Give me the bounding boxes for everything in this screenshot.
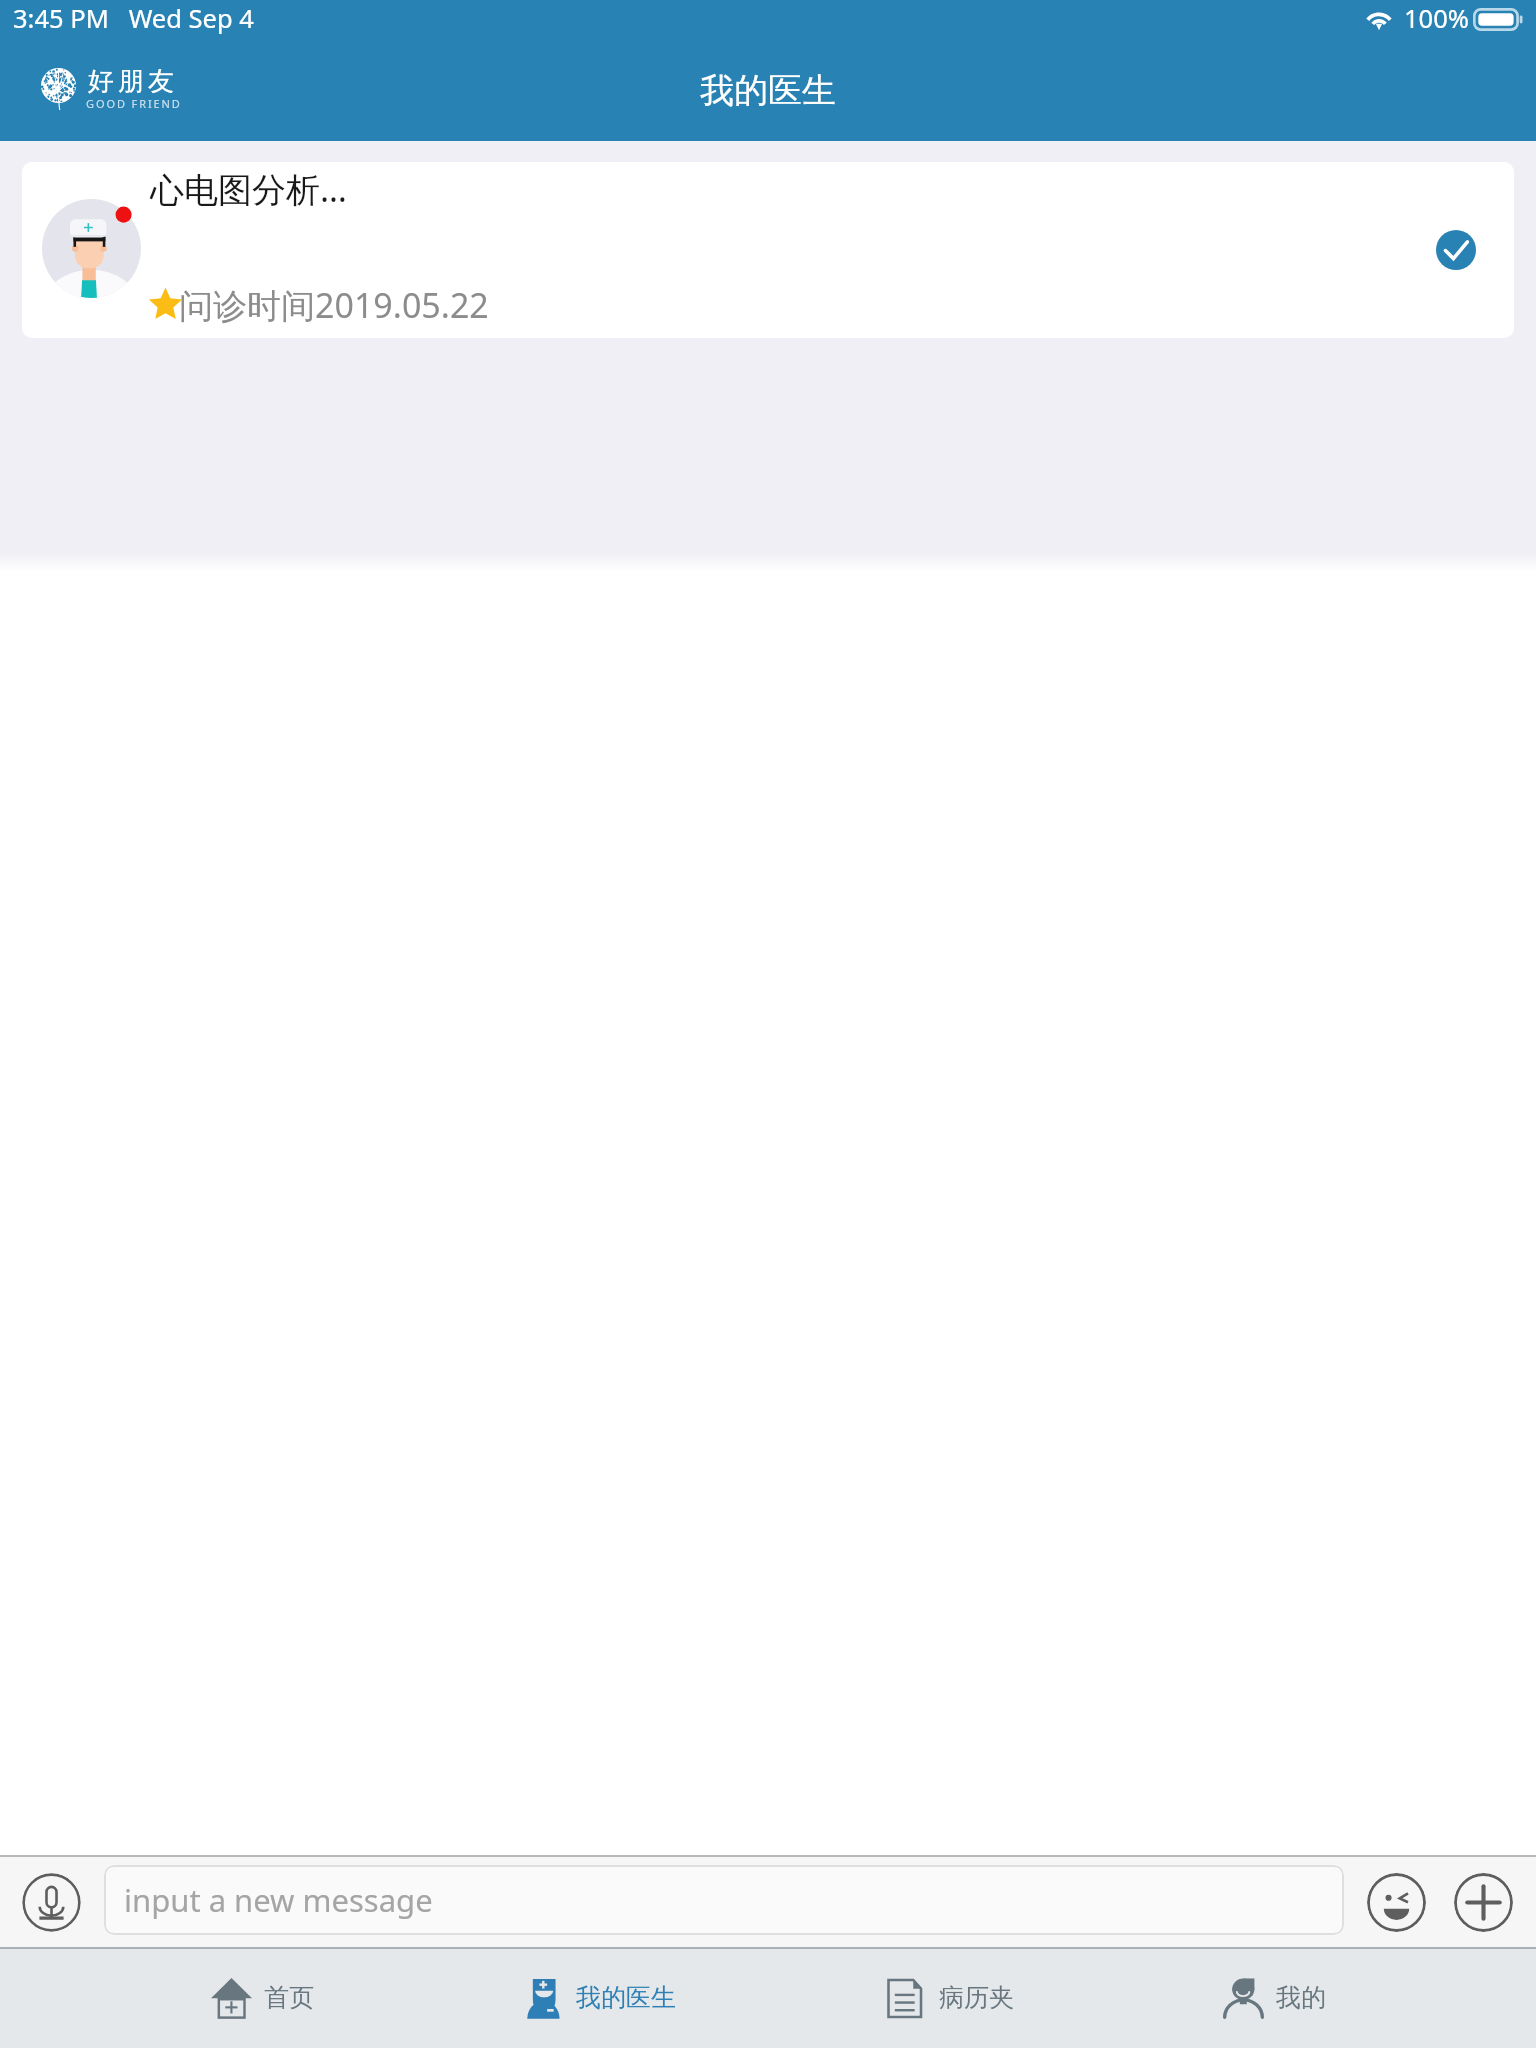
button[interactable]: Voice input: [22, 1873, 81, 1932]
staticText: 3:45 PM Wed Sep 4: [13, 1, 254, 36]
button[interactable]: Add: [1454, 1873, 1513, 1932]
staticText: 问诊时间2019.05.22: [179, 282, 489, 328]
staticText: 心电图分析…: [150, 166, 347, 212]
button[interactable]: 病历夹: [846, 1949, 1054, 2048]
button[interactable]: 我的医生: [483, 1949, 716, 2048]
staticText: 病历夹: [939, 1982, 1014, 2013]
button[interactable]: 心电图分析…: [22, 162, 1514, 338]
button[interactable]: 我的: [1183, 1949, 1366, 2048]
button[interactable]: input a new message: [104, 1865, 1344, 1935]
staticText: 我的: [1276, 1982, 1326, 2013]
staticText: 100%: [1404, 1, 1469, 36]
staticText: GOOD FRIEND: [86, 96, 182, 111]
staticText: 我的医生: [576, 1982, 676, 2013]
staticText: 我的医生: [700, 69, 836, 112]
button[interactable]: Emoji: [1367, 1873, 1426, 1932]
button[interactable]: Consultation finished: [1436, 230, 1476, 270]
staticText: 首页: [264, 1982, 314, 2013]
button[interactable]: 首页: [171, 1949, 354, 2048]
staticText: input a new message: [124, 1879, 433, 1921]
staticText: 好朋友: [86, 65, 176, 98]
